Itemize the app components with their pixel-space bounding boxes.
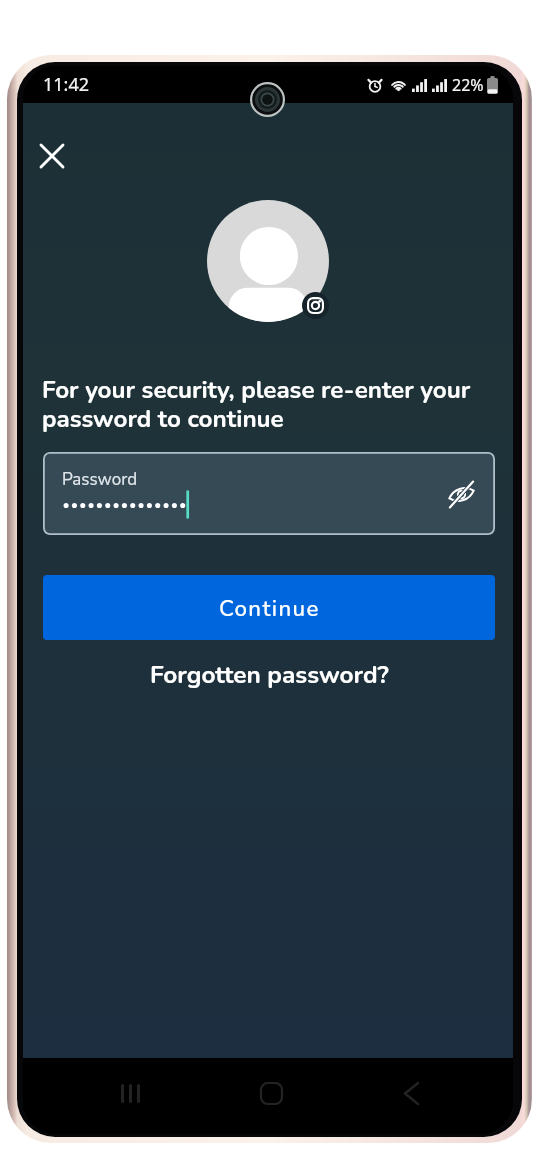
button[interactable]: Back xyxy=(389,1071,433,1115)
button[interactable]: Continue xyxy=(43,575,495,640)
button[interactable]: Close xyxy=(28,132,76,180)
staticText: Forgotten password? xyxy=(150,658,389,691)
staticText: 22% xyxy=(452,74,484,96)
staticText: Password xyxy=(62,468,138,491)
staticText: For your security, please re-enter your … xyxy=(42,374,478,435)
button[interactable]: Password xyxy=(43,452,495,535)
button[interactable]: Forgotten password? xyxy=(43,654,495,694)
staticText: 11:42 xyxy=(43,72,90,97)
button[interactable]: Instagram xyxy=(302,292,329,319)
button[interactable]: Recent apps xyxy=(108,1071,152,1115)
staticText: Continue xyxy=(219,593,320,623)
button[interactable]: Home xyxy=(249,1071,293,1115)
button[interactable]: Show password xyxy=(442,475,480,513)
